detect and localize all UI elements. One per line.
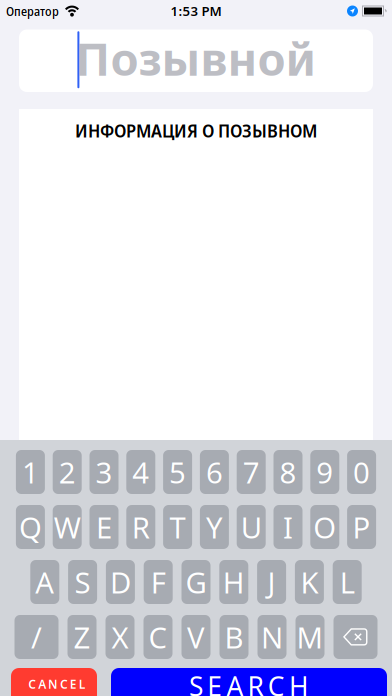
button[interactable]: Delete bbox=[333, 615, 377, 659]
button[interactable]: 5 bbox=[163, 450, 192, 494]
button[interactable]: Y bbox=[200, 505, 229, 549]
staticText: T bbox=[170, 507, 186, 547]
staticText: 5 bbox=[169, 452, 186, 492]
staticText: H bbox=[289, 672, 309, 696]
staticText: M bbox=[296, 617, 323, 657]
staticText: X bbox=[111, 617, 128, 657]
staticText: Позывной bbox=[75, 27, 316, 89]
button[interactable]: T bbox=[163, 505, 192, 549]
staticText: H bbox=[223, 562, 245, 602]
button[interactable]: Q bbox=[16, 505, 45, 549]
staticText: 1 bbox=[22, 452, 39, 492]
button[interactable]: O bbox=[310, 505, 339, 549]
button[interactable]: P bbox=[347, 505, 376, 549]
button[interactable]: R bbox=[126, 505, 155, 549]
button[interactable]: Позывной bbox=[19, 29, 373, 92]
staticText: C bbox=[148, 617, 167, 657]
button[interactable]: G bbox=[181, 560, 210, 604]
staticText: L bbox=[79, 677, 86, 691]
staticText: B bbox=[224, 617, 243, 657]
staticText: N bbox=[48, 677, 58, 691]
staticText: G bbox=[185, 562, 206, 602]
button[interactable]: E bbox=[89, 505, 118, 549]
button[interactable]: C bbox=[143, 615, 172, 659]
staticText: A bbox=[38, 677, 46, 691]
staticText: 7 bbox=[243, 452, 260, 492]
staticText: V bbox=[187, 617, 205, 657]
staticText: E bbox=[207, 672, 222, 696]
staticText: 0 bbox=[353, 452, 370, 492]
staticText: 6 bbox=[206, 452, 223, 492]
button[interactable]: L bbox=[333, 560, 362, 604]
staticText: W bbox=[54, 507, 81, 547]
button[interactable]: 8 bbox=[273, 450, 302, 494]
button[interactable]: / bbox=[14, 615, 58, 659]
staticText: C bbox=[268, 672, 285, 696]
staticText: S bbox=[75, 562, 91, 602]
button[interactable]: D bbox=[106, 560, 135, 604]
staticText: 4 bbox=[132, 452, 149, 492]
button[interactable]: H bbox=[219, 560, 248, 604]
staticText: 3 bbox=[95, 452, 112, 492]
staticText: C bbox=[60, 677, 68, 691]
button[interactable]: 3 bbox=[89, 450, 118, 494]
button[interactable]: J bbox=[257, 560, 286, 604]
staticText: U bbox=[241, 507, 262, 547]
staticText: N bbox=[261, 617, 283, 657]
button[interactable]: M bbox=[295, 615, 324, 659]
staticText: D bbox=[110, 562, 131, 602]
staticText: E bbox=[96, 507, 112, 547]
button[interactable]: V bbox=[181, 615, 210, 659]
staticText: Y bbox=[206, 507, 223, 547]
staticText: 2 bbox=[59, 452, 76, 492]
staticText: O bbox=[313, 507, 336, 547]
staticText: Z bbox=[73, 617, 90, 657]
staticText: S bbox=[189, 672, 203, 696]
staticText: / bbox=[31, 617, 42, 657]
button[interactable]: S bbox=[111, 668, 387, 696]
staticText: 9 bbox=[316, 452, 333, 492]
staticText: K bbox=[300, 562, 318, 602]
staticText: P bbox=[353, 507, 371, 547]
staticText: F bbox=[151, 562, 166, 602]
button[interactable]: 7 bbox=[237, 450, 266, 494]
button[interactable]: 2 bbox=[53, 450, 82, 494]
staticText: C bbox=[28, 677, 36, 691]
staticText: R bbox=[248, 672, 264, 696]
button[interactable]: F bbox=[144, 560, 173, 604]
button[interactable]: A bbox=[30, 560, 59, 604]
staticText: I bbox=[283, 507, 293, 547]
staticText: Оператор bbox=[6, 2, 59, 20]
button[interactable]: S bbox=[68, 560, 97, 604]
staticText: J bbox=[268, 562, 276, 602]
button[interactable]: I bbox=[273, 505, 302, 549]
button[interactable]: 9 bbox=[310, 450, 339, 494]
button[interactable]: Z bbox=[67, 615, 96, 659]
button[interactable]: X bbox=[105, 615, 134, 659]
button[interactable]: C bbox=[11, 668, 97, 696]
button[interactable]: K bbox=[295, 560, 324, 604]
button[interactable]: 4 bbox=[126, 450, 155, 494]
button[interactable]: U bbox=[237, 505, 266, 549]
staticText: A bbox=[226, 672, 243, 696]
staticText: ИНФОРМАЦИЯ О ПОЗЫВНОМ bbox=[75, 118, 317, 143]
staticText: E bbox=[70, 677, 77, 691]
button[interactable]: 0 bbox=[347, 450, 376, 494]
button[interactable]: 6 bbox=[200, 450, 229, 494]
staticText: Q bbox=[19, 507, 42, 547]
button[interactable]: B bbox=[219, 615, 248, 659]
staticText: R bbox=[132, 507, 150, 547]
button[interactable]: N bbox=[257, 615, 286, 659]
staticText: 1:53 PM bbox=[170, 2, 221, 20]
button[interactable]: 1 bbox=[16, 450, 45, 494]
button[interactable]: W bbox=[53, 505, 82, 549]
staticText: 8 bbox=[279, 452, 296, 492]
staticText: L bbox=[340, 562, 355, 602]
staticText: A bbox=[35, 562, 54, 602]
